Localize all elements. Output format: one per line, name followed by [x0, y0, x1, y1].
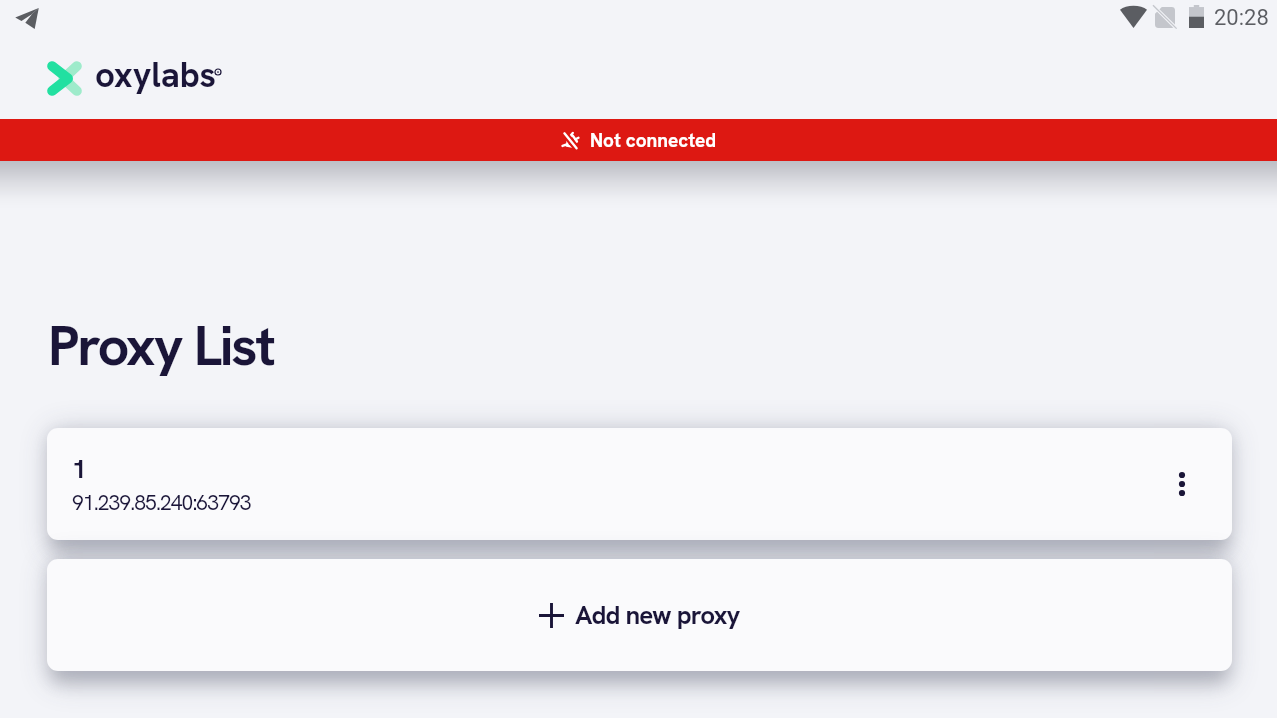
staticText: Proxy List [48, 309, 274, 382]
staticText: 91.239.85.240:63793 [72, 489, 251, 516]
staticText: 1 [72, 452, 87, 486]
staticText: Add new proxy [575, 598, 740, 632]
staticText: 20:28 [1214, 5, 1269, 31]
button[interactable]: More options [1160, 462, 1204, 506]
staticText: Not connected [590, 128, 717, 153]
button[interactable]: 1 [47, 428, 1232, 540]
button[interactable]: Add new proxy [47, 559, 1232, 671]
staticText: oxylabs [95, 52, 216, 98]
